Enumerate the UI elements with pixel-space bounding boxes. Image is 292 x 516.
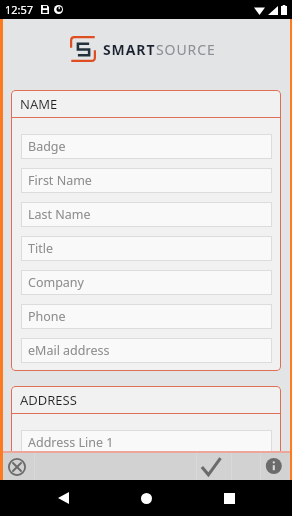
staticText: 12:57 xyxy=(5,2,34,17)
button[interactable]: Badge xyxy=(21,134,272,159)
button[interactable]: Last Name xyxy=(21,202,272,227)
staticText: Title xyxy=(28,240,53,257)
button[interactable]: Home xyxy=(128,480,164,516)
staticText: eMail address xyxy=(28,342,110,359)
staticText: Phone xyxy=(28,308,66,325)
staticText: SOURCE xyxy=(156,40,216,59)
staticText: First Name xyxy=(28,172,92,189)
staticText: Last Name xyxy=(28,206,91,223)
staticText: Address Line 1 xyxy=(28,434,114,451)
button[interactable]: Company xyxy=(21,270,272,295)
button[interactable]: Back xyxy=(45,480,81,516)
staticText: Badge xyxy=(28,138,66,155)
button[interactable]: Save xyxy=(197,453,231,480)
button[interactable]: First Name xyxy=(21,168,272,193)
button[interactable]: Recents xyxy=(211,480,247,516)
staticText: SMART xyxy=(103,40,156,59)
staticText: ADDRESS xyxy=(20,391,77,409)
button[interactable]: Phone xyxy=(21,304,272,329)
button[interactable]: Address Line 1 xyxy=(21,430,272,451)
button[interactable]: Title xyxy=(21,236,272,261)
staticText: NAME xyxy=(20,95,58,113)
staticText: Company xyxy=(28,274,84,291)
button[interactable]: Cancel xyxy=(3,453,34,480)
button[interactable]: eMail address xyxy=(21,338,272,363)
button[interactable]: Info xyxy=(261,453,292,480)
